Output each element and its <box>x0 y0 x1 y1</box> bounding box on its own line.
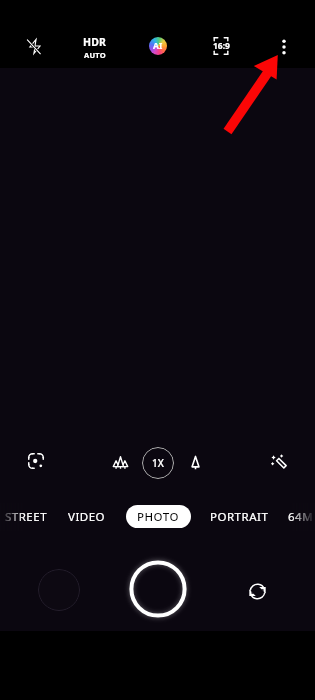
staticText: STREET <box>5 509 48 525</box>
button[interactable]: 64M <box>282 505 315 528</box>
staticText: AI <box>153 40 163 52</box>
button[interactable]: Switch camera <box>239 573 275 609</box>
staticText: HDR <box>83 35 107 49</box>
button[interactable]: PHOTO <box>126 505 191 528</box>
button[interactable]: Gallery <box>38 569 80 611</box>
button[interactable]: STREET <box>0 505 54 528</box>
staticText: 1X <box>152 456 164 470</box>
button[interactable]: Google Lens <box>18 443 54 479</box>
staticText: PORTRAIT <box>210 509 269 525</box>
button[interactable]: Aspect ratio 16 by 9 <box>203 28 239 64</box>
button[interactable]: Telephoto lens <box>179 446 211 478</box>
button[interactable]: PORTRAIT <box>204 505 275 528</box>
button[interactable]: More options <box>266 29 302 65</box>
button[interactable]: Ultra wide lens <box>104 446 136 478</box>
button[interactable]: HDR auto <box>73 29 117 65</box>
staticText: VIDEO <box>68 509 106 525</box>
button[interactable]: VIDEO <box>62 505 112 528</box>
button[interactable]: Take photo <box>118 549 198 629</box>
staticText: 64M <box>288 509 314 525</box>
button[interactable]: Filters <box>260 443 296 479</box>
staticText: 16:9 <box>213 40 230 52</box>
button[interactable]: 1X <box>142 447 174 479</box>
staticText: PHOTO <box>137 509 180 525</box>
button[interactable]: AI mode <box>140 28 176 64</box>
staticText: AUTO <box>84 50 106 60</box>
button[interactable]: Flash off <box>16 28 52 64</box>
